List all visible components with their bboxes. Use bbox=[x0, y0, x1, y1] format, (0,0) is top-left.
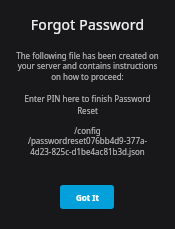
button[interactable]: Got It bbox=[60, 185, 114, 209]
staticText: The following file has been created on y… bbox=[0, 50, 175, 83]
staticText: Forgot Password bbox=[0, 15, 175, 34]
staticText: Enter PIN here to finish Password Reset bbox=[0, 93, 175, 116]
staticText: Got It bbox=[76, 192, 99, 203]
staticText: /config /passwordreset076bb4d9-377a- 4d2… bbox=[0, 125, 175, 158]
